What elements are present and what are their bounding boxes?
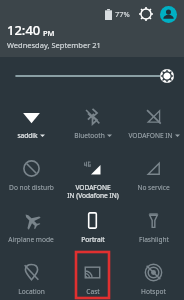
staticText: Cast <box>86 287 100 296</box>
button[interactable]: Bluetooth <box>62 99 123 151</box>
button[interactable]: 12:40 <box>7 21 101 50</box>
staticText: PM <box>43 28 55 38</box>
button[interactable]: User account <box>158 4 178 24</box>
button[interactable]: saddik <box>0 99 62 151</box>
button[interactable]: VODAFONE IN (Vodafone IN) <box>62 151 123 203</box>
staticText: Bluetooth <box>74 131 105 140</box>
staticText: Do not disturb <box>9 183 54 192</box>
button[interactable]: Hotspot <box>123 255 184 300</box>
staticText: VODAFONE IN <box>128 131 173 140</box>
staticText: 77% <box>115 9 130 19</box>
button[interactable]: Brightness <box>0 57 184 95</box>
button[interactable]: Portrait <box>62 203 123 255</box>
staticText: VODAFONE IN (Vodafone IN) <box>67 183 119 200</box>
staticText: Flashlight <box>139 235 169 244</box>
button[interactable]: No service <box>123 151 184 203</box>
staticText: Portrait <box>81 235 105 244</box>
button[interactable]: Airplane mode <box>0 203 62 255</box>
button[interactable]: Do not disturb <box>0 151 62 203</box>
button[interactable]: Flashlight <box>123 203 184 255</box>
button[interactable]: Settings <box>137 5 155 23</box>
button[interactable]: Location <box>0 255 62 300</box>
staticText: saddik <box>17 131 38 140</box>
staticText: 12:40 <box>7 21 41 39</box>
staticText: No service <box>137 183 170 192</box>
staticText: Hotspot <box>141 287 166 296</box>
staticText: Wednesday, September 21 <box>7 40 101 50</box>
staticText: Airplane mode <box>8 235 54 244</box>
button[interactable]: VODAFONE IN <box>123 99 184 151</box>
staticText: Location <box>18 287 45 296</box>
button[interactable]: Cast <box>62 255 123 300</box>
